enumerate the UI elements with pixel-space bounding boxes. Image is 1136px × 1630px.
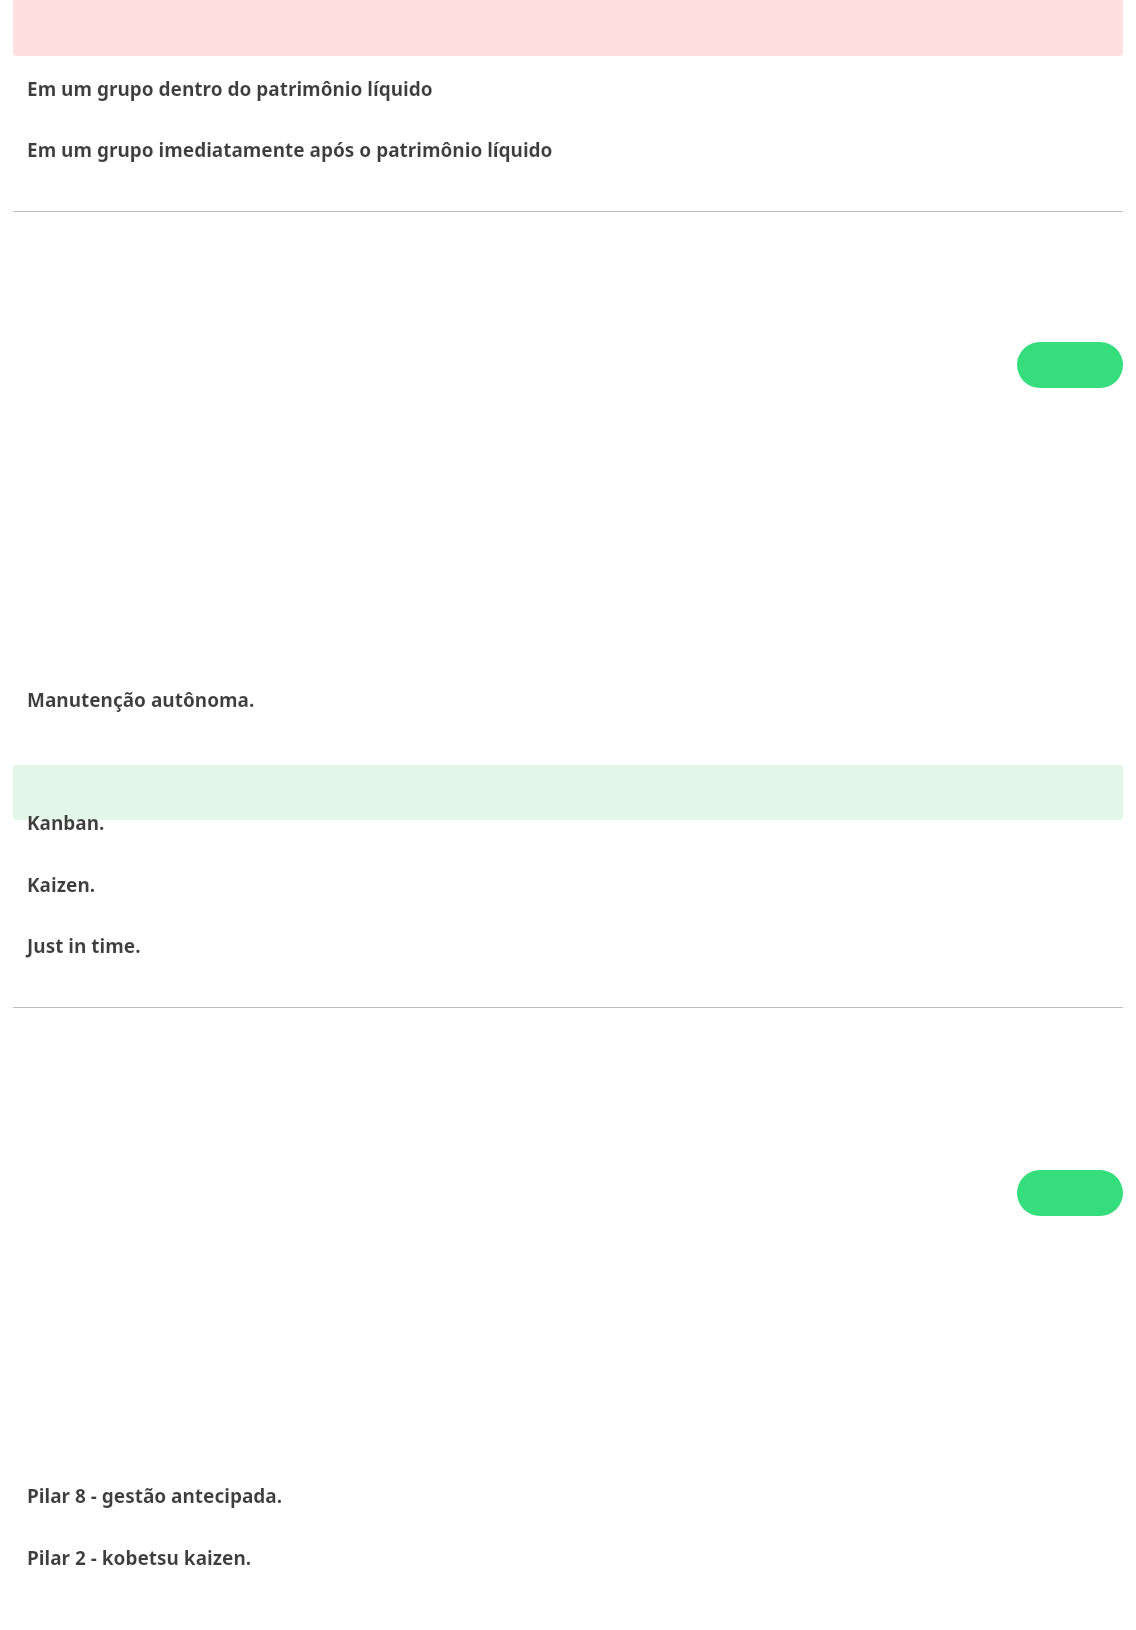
staticText: Em um grupo dentro do patrimônio líquido xyxy=(27,76,433,102)
button[interactable]: Kaizen. xyxy=(0,868,1136,902)
button[interactable] xyxy=(13,765,1123,820)
button[interactable]: Just in time. xyxy=(0,929,1136,963)
button[interactable]: Em um grupo dentro do patrimônio líquido xyxy=(0,72,1136,106)
staticText: Just in time. xyxy=(27,933,141,959)
staticText: Kanban. xyxy=(27,810,105,836)
staticText: Em um grupo imediatamente após o patrimô… xyxy=(27,137,553,163)
button[interactable]: Responder xyxy=(1017,342,1123,388)
staticText: Kaizen. xyxy=(27,872,96,898)
staticText: Manutenção autônoma. xyxy=(27,687,255,713)
button[interactable]: Pilar 8 - gestão antecipada. xyxy=(0,1479,1136,1513)
button[interactable]: Pilar 2 - kobetsu kaizen. xyxy=(0,1541,1136,1575)
staticText: Pilar 8 - gestão antecipada. xyxy=(27,1483,283,1509)
button[interactable]: Kanban. xyxy=(0,806,1136,840)
button[interactable]: Manutenção autônoma. xyxy=(0,683,1136,717)
staticText: Pilar 2 - kobetsu kaizen. xyxy=(27,1545,252,1571)
button[interactable]: Em um grupo imediatamente após o patrimô… xyxy=(0,133,1136,167)
button[interactable]: Responder xyxy=(1017,1170,1123,1216)
